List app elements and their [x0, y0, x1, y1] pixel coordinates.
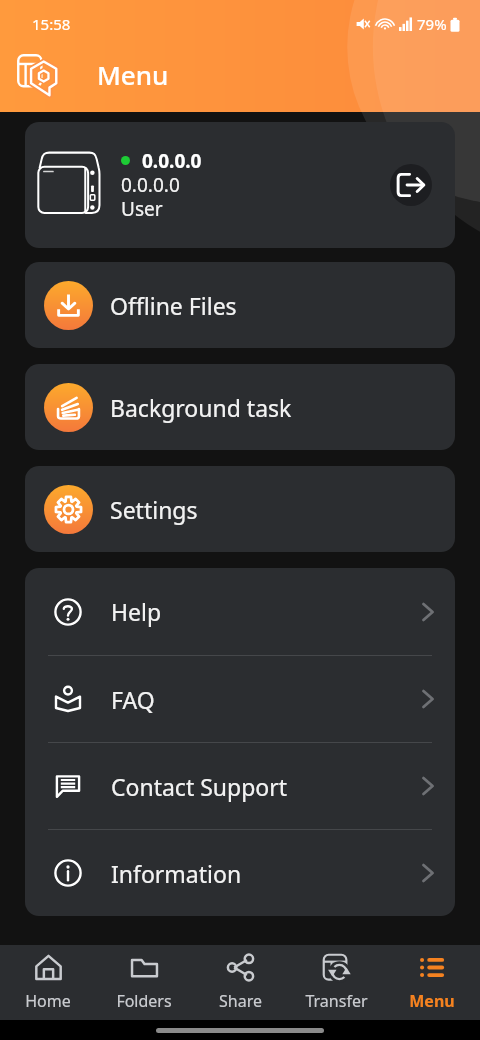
button[interactable]: Share [192, 945, 288, 1020]
button[interactable]: 0.0.0.0 [25, 122, 455, 248]
staticText: FAQ [111, 684, 422, 715]
staticText: 0.0.0.0 [142, 148, 202, 172]
button[interactable]: Folders [96, 945, 192, 1020]
button[interactable]: FAQ [25, 656, 455, 742]
button[interactable]: Log out [390, 164, 432, 206]
button[interactable]: Transfer [288, 945, 384, 1020]
button[interactable]: Contact Support [25, 743, 455, 829]
button[interactable]: Help [25, 568, 455, 655]
staticText: Information [111, 858, 422, 889]
staticText: 0.0.0.0 [121, 172, 180, 196]
staticText: Help [111, 596, 422, 627]
staticText: Share [219, 990, 262, 1012]
button[interactable]: Menu [384, 945, 480, 1020]
staticText: Transfer [305, 990, 368, 1012]
staticText: 15:58 [32, 14, 71, 34]
staticText: 79% [417, 14, 447, 34]
button[interactable]: Home [0, 945, 96, 1020]
button[interactable]: Background task [25, 364, 455, 450]
staticText: Settings [110, 494, 198, 525]
staticText: Home [25, 990, 71, 1012]
staticText: Folders [116, 990, 172, 1012]
button[interactable]: Offline Files [25, 262, 455, 348]
staticText: Background task [110, 392, 292, 423]
staticText: Menu [97, 57, 169, 92]
button[interactable]: Settings [25, 466, 455, 552]
staticText: Menu [409, 990, 455, 1012]
button[interactable]: Information [25, 830, 455, 916]
staticText: User [121, 196, 163, 220]
staticText: Offline Files [110, 290, 237, 321]
staticText: Contact Support [111, 771, 422, 802]
